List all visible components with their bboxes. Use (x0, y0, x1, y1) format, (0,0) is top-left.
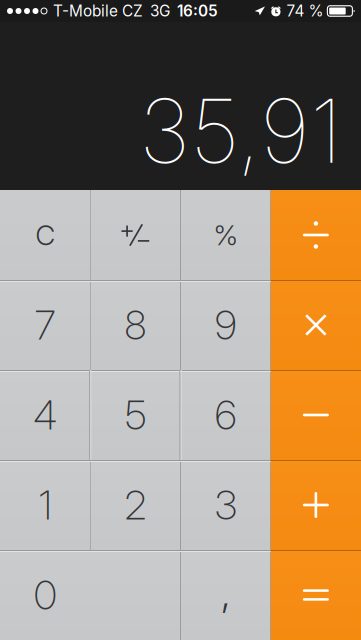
staticText: 0 (34, 571, 57, 619)
button[interactable]: 1 (0, 460, 90, 550)
button[interactable]: 5 (90, 370, 180, 460)
staticText: 6 (215, 391, 237, 439)
staticText: 8 (124, 301, 146, 349)
button[interactable]: , (180, 550, 271, 640)
staticText: 1 (39, 481, 52, 529)
button[interactable]: 7 (0, 280, 90, 370)
button[interactable]: 3 (180, 460, 271, 550)
staticText: 35,91 (139, 77, 342, 184)
button[interactable]: Multiply (271, 280, 361, 370)
button[interactable]: C (0, 190, 90, 280)
staticText: 5 (125, 391, 146, 439)
button[interactable]: Minus (271, 370, 361, 460)
button[interactable]: Plus minus (90, 190, 180, 280)
staticText: 3 (215, 481, 237, 529)
button[interactable]: 2 (90, 460, 180, 550)
button[interactable]: Divide (271, 190, 361, 280)
staticText: % (213, 218, 238, 252)
staticText: 4 (33, 391, 57, 439)
button[interactable]: Equals (271, 550, 361, 640)
button[interactable]: % (180, 190, 271, 280)
button[interactable]: 6 (180, 370, 271, 460)
staticText: C (35, 218, 55, 252)
button[interactable]: 0 (0, 550, 180, 640)
staticText: 74 % (286, 2, 323, 20)
button[interactable]: Plus (271, 460, 361, 550)
button[interactable]: 9 (180, 280, 271, 370)
staticText: 7 (35, 301, 56, 349)
staticText: T-Mobile CZ (53, 2, 143, 20)
staticText: , (221, 567, 230, 617)
staticText: 9 (215, 301, 237, 349)
staticText: 2 (124, 481, 146, 529)
staticText: 16:05 (177, 2, 218, 20)
staticText: 3G (150, 2, 170, 20)
button[interactable]: 8 (90, 280, 180, 370)
button[interactable]: 4 (0, 370, 90, 460)
